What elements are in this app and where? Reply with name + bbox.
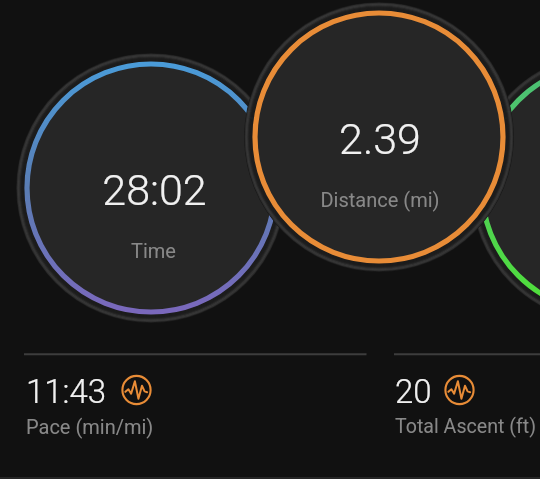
button[interactable]: Distance 2.39 miles [244,2,514,272]
staticText: Distance (mi) [320,188,440,211]
staticText: 20 [395,372,432,411]
staticText: Total Ascent (ft) [395,415,536,438]
staticText: 11:43 [26,372,107,411]
button[interactable]: Pace 11:43 minutes per mile [0,335,370,479]
button[interactable]: Time 28:02 [16,53,286,323]
staticText: 28:02 [102,165,207,215]
staticText: Pace (min/mi) [26,415,154,438]
staticText: 2.39 [339,114,421,164]
staticText: Time [131,239,176,262]
button[interactable]: Elevation [471,53,540,323]
button[interactable]: Total Ascent 20 feet [370,335,540,479]
